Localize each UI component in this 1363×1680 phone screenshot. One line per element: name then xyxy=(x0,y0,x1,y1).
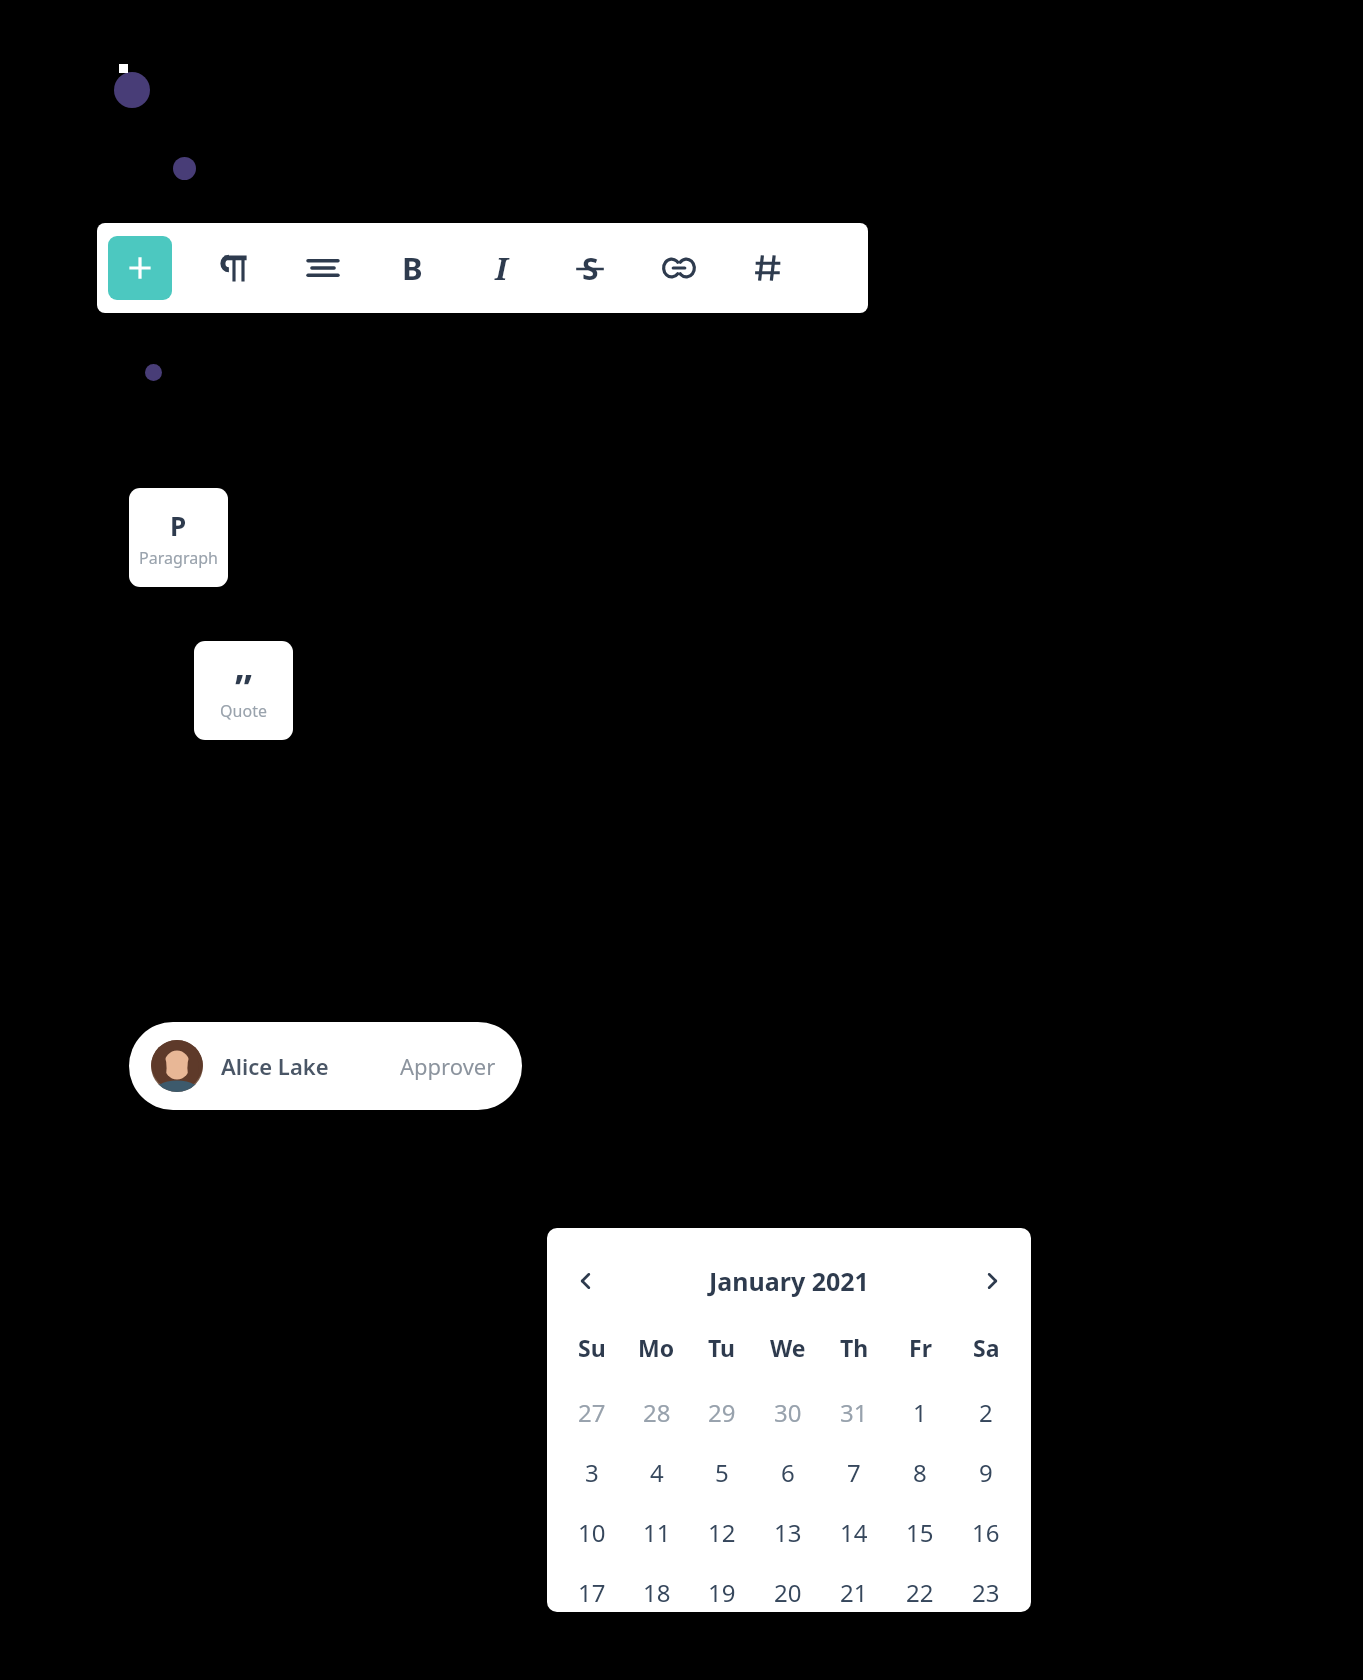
button[interactable]: 2 xyxy=(953,1384,1019,1440)
staticText: Mo xyxy=(638,1332,675,1363)
button[interactable]: P xyxy=(129,488,228,587)
staticText: 12 xyxy=(708,1516,736,1549)
staticText: 6 xyxy=(781,1456,795,1489)
button[interactable]: Heading xyxy=(740,240,796,296)
button[interactable]: 12 xyxy=(689,1504,755,1560)
button[interactable]: 8 xyxy=(887,1444,953,1500)
staticText: 13 xyxy=(774,1516,802,1549)
button[interactable]: 1 xyxy=(887,1384,953,1440)
button[interactable]: Strikethrough xyxy=(562,240,618,296)
button[interactable]: 29 xyxy=(689,1384,755,1440)
staticText: Alice Lake xyxy=(221,1051,329,1081)
button[interactable]: 6 xyxy=(755,1444,821,1500)
staticText: 9 xyxy=(979,1456,993,1489)
staticText: Paragraph xyxy=(139,547,218,569)
button[interactable]: 7 xyxy=(821,1444,887,1500)
staticText: 29 xyxy=(708,1396,736,1429)
staticText: 11 xyxy=(643,1516,671,1549)
button[interactable]: 16 xyxy=(953,1504,1019,1560)
button[interactable]: 19 xyxy=(689,1564,755,1612)
staticText: P xyxy=(170,508,187,543)
button[interactable]: 27 xyxy=(559,1384,624,1440)
button[interactable]: 15 xyxy=(887,1504,953,1560)
button[interactable]: ” xyxy=(194,641,293,740)
button[interactable]: 11 xyxy=(624,1504,689,1560)
staticText: S xyxy=(582,248,599,289)
button[interactable]: 13 xyxy=(755,1504,821,1560)
button[interactable]: Alice Lake xyxy=(129,1022,522,1110)
button[interactable]: 18 xyxy=(624,1564,689,1612)
staticText: Tu xyxy=(708,1332,736,1363)
staticText: 22 xyxy=(906,1576,934,1609)
button[interactable]: Bold xyxy=(384,240,440,296)
staticText: 3 xyxy=(585,1456,599,1489)
staticText: I xyxy=(495,247,508,289)
staticText: 31 xyxy=(840,1396,868,1429)
staticText: Sa xyxy=(973,1332,1000,1363)
button[interactable]: Paragraph mark xyxy=(206,240,262,296)
staticText: 21 xyxy=(840,1576,868,1609)
button[interactable]: 14 xyxy=(821,1504,887,1560)
staticText: 18 xyxy=(643,1576,671,1609)
button[interactable]: 4 xyxy=(624,1444,689,1500)
button[interactable]: Italic xyxy=(473,240,529,296)
staticText: 17 xyxy=(578,1576,606,1609)
button[interactable]: 22 xyxy=(887,1564,953,1612)
staticText: 4 xyxy=(650,1456,664,1489)
staticText: Quote xyxy=(220,700,267,722)
staticText: 16 xyxy=(972,1516,1000,1549)
staticText: 5 xyxy=(715,1456,729,1489)
button[interactable]: Link xyxy=(651,240,707,296)
staticText: 23 xyxy=(972,1576,1000,1609)
button[interactable]: 21 xyxy=(821,1564,887,1612)
button[interactable]: 31 xyxy=(821,1384,887,1440)
staticText: 27 xyxy=(578,1396,606,1429)
staticText: We xyxy=(770,1332,806,1363)
staticText: B xyxy=(402,247,423,289)
staticText: ” xyxy=(235,661,252,713)
button[interactable]: 20 xyxy=(755,1564,821,1612)
button[interactable]: Next month xyxy=(965,1254,1019,1308)
button[interactable]: 17 xyxy=(559,1564,624,1612)
button[interactable]: 23 xyxy=(953,1564,1019,1612)
staticText: 10 xyxy=(578,1516,606,1549)
staticText: Approver xyxy=(400,1051,496,1081)
button[interactable]: 10 xyxy=(559,1504,624,1560)
staticText: 30 xyxy=(774,1396,802,1429)
staticText: Su xyxy=(578,1332,606,1363)
button[interactable]: 9 xyxy=(953,1444,1019,1500)
staticText: January 2021 xyxy=(709,1264,869,1298)
staticText: 20 xyxy=(774,1576,802,1609)
button[interactable]: 30 xyxy=(755,1384,821,1440)
staticText: Fr xyxy=(909,1332,932,1363)
staticText: 28 xyxy=(643,1396,671,1429)
button[interactable]: 3 xyxy=(559,1444,624,1500)
staticText: 19 xyxy=(708,1576,736,1609)
staticText: 14 xyxy=(840,1516,868,1549)
staticText: 1 xyxy=(913,1396,927,1429)
button[interactable]: Previous month xyxy=(559,1254,613,1308)
button[interactable]: Align xyxy=(295,240,351,296)
staticText: Th xyxy=(840,1332,869,1363)
staticText: 2 xyxy=(979,1396,993,1429)
button[interactable]: Add block xyxy=(108,236,172,300)
staticText: 8 xyxy=(913,1456,927,1489)
button[interactable]: 5 xyxy=(689,1444,755,1500)
staticText: 7 xyxy=(847,1456,861,1489)
staticText: 15 xyxy=(906,1516,934,1549)
button[interactable]: 28 xyxy=(624,1384,689,1440)
